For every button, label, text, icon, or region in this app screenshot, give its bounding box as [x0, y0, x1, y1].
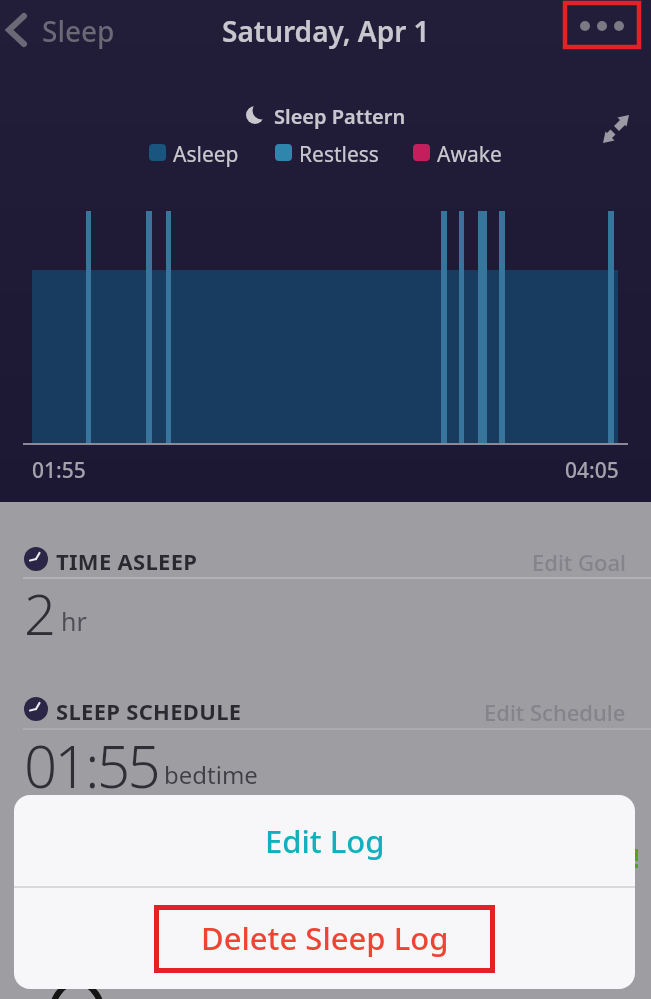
staticText: TIME ASLEEP: [56, 546, 198, 576]
staticText: Asleep: [173, 140, 239, 169]
button[interactable]: Edit Goal: [532, 547, 626, 577]
staticText: Restless: [299, 140, 379, 169]
button[interactable]: Edit Log: [14, 795, 635, 886]
staticText: Edit Log: [265, 820, 385, 862]
staticText: SLEEP SCHEDULE: [56, 696, 242, 726]
button[interactable]: [600, 112, 632, 148]
staticText: Delete Sleep Log: [201, 917, 449, 959]
staticText: 01:55: [24, 726, 159, 805]
staticText: Sleep Pattern: [274, 103, 406, 130]
staticText: 04:05: [565, 456, 619, 485]
staticText: Sleep: [42, 12, 115, 50]
button[interactable]: Delete Sleep Log: [14, 887, 635, 989]
staticText: 2: [24, 575, 56, 651]
staticText: 01:55: [32, 456, 86, 485]
button[interactable]: Edit Schedule: [484, 697, 626, 727]
staticText: bedtime: [164, 758, 258, 791]
staticText: hr: [61, 604, 87, 638]
button[interactable]: Sleep: [6, 8, 126, 54]
staticText: Awake: [437, 140, 502, 169]
button[interactable]: [565, 2, 639, 48]
staticText: Saturday, Apr 1: [222, 12, 430, 50]
